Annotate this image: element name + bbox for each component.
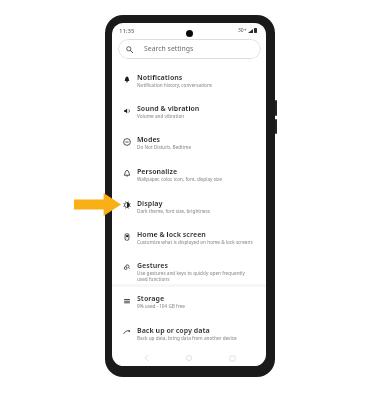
staticText: Gestures (137, 261, 169, 271)
staticText: Use gestures and keys to quickly open fr… (137, 270, 255, 282)
staticText: Back up data, bring data from another de… (137, 335, 255, 341)
staticText: 9% used · 104 GB free (137, 303, 255, 309)
staticText: Sound & vibration (137, 104, 200, 114)
button[interactable] (112, 287, 266, 318)
staticText: Display (137, 199, 163, 209)
button[interactable] (112, 254, 266, 285)
staticText: 11:35 (119, 27, 135, 35)
staticText: Search settings (144, 44, 194, 53)
button[interactable] (112, 223, 266, 254)
staticText: Notification history, conversations (137, 82, 255, 88)
button[interactable] (112, 66, 266, 97)
staticText: Notifications (137, 73, 183, 83)
button[interactable] (112, 319, 266, 350)
staticText: Back up or copy data (137, 326, 210, 336)
button[interactable]: Search settings (118, 39, 261, 59)
button[interactable] (112, 192, 266, 223)
button[interactable]: Back (136, 348, 156, 366)
staticText: Customize what is displayed on home & lo… (137, 239, 255, 245)
button[interactable] (112, 97, 266, 128)
staticText: Volume and vibration (137, 113, 255, 119)
staticText: Do Not Disturb, Bedtime (137, 144, 255, 150)
button[interactable]: Recent apps (222, 348, 242, 366)
staticText: Personalize (137, 167, 178, 177)
button[interactable] (112, 128, 266, 159)
staticText: Home & lock screen (137, 230, 206, 240)
staticText: Dark theme, font size, brightness (137, 208, 255, 214)
staticText: Modes (137, 135, 161, 145)
staticText: Wallpaper, color, icon, font, display si… (137, 176, 255, 182)
button[interactable]: Home (179, 348, 199, 366)
button[interactable] (112, 160, 266, 191)
staticText: 30+ (238, 27, 247, 34)
staticText: Storage (137, 294, 165, 304)
